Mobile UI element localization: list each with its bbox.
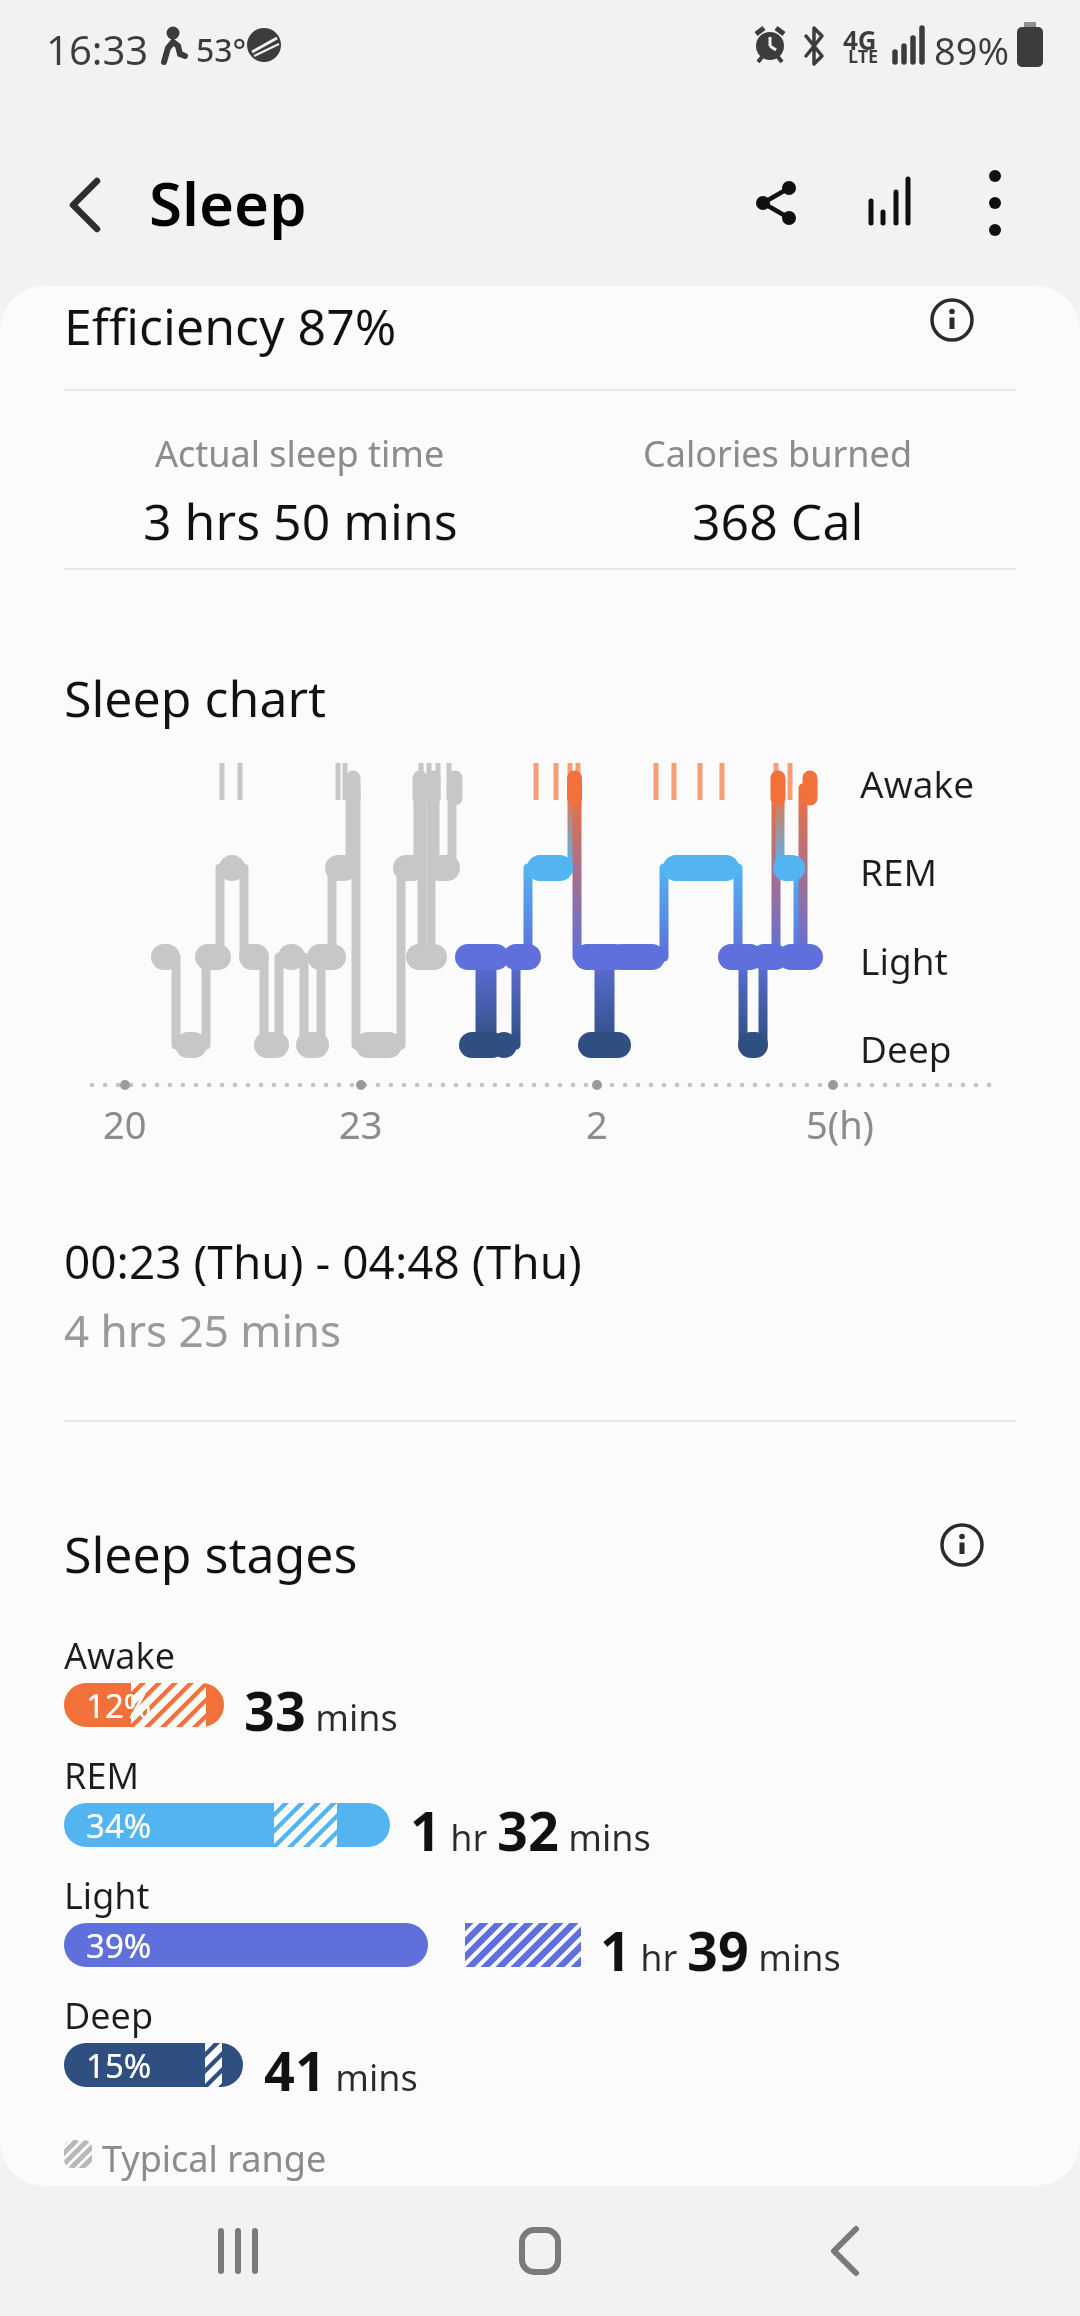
staticText: 1 <box>600 1913 631 1987</box>
staticText: 39 <box>687 1913 749 1987</box>
button[interactable] <box>732 158 822 248</box>
staticText: 89% <box>934 24 1010 76</box>
staticText: 3 hrs 50 mins <box>143 487 458 553</box>
staticText: Light <box>860 935 948 985</box>
staticText: mins <box>749 1933 841 1982</box>
staticText: mins <box>559 1813 651 1862</box>
staticText: 23 <box>339 1098 383 1148</box>
staticText: Awake <box>64 1631 176 1680</box>
staticText: Sleep chart <box>64 664 327 732</box>
staticText: 16:33 <box>46 22 149 76</box>
staticText: Deep <box>64 1991 154 2040</box>
staticText: hr <box>631 1933 687 1982</box>
staticText: Typical range <box>102 2134 327 2183</box>
staticText: Light <box>64 1871 150 1920</box>
staticText: REM <box>860 846 938 896</box>
button[interactable] <box>485 2196 595 2306</box>
button[interactable] <box>845 158 935 248</box>
staticText: 15% <box>86 2043 152 2087</box>
staticText: hr <box>441 1813 497 1862</box>
button[interactable] <box>930 298 974 342</box>
staticText: 53° <box>196 28 247 72</box>
staticText: 2 <box>586 1098 608 1148</box>
staticText: 368 Cal <box>692 487 864 553</box>
staticText: Sleep <box>149 162 307 244</box>
staticText: 41 <box>264 2033 326 2107</box>
staticText: 1 <box>410 1793 441 1867</box>
staticText: REM <box>64 1751 140 1800</box>
staticText: Calories burned <box>643 429 913 478</box>
button[interactable] <box>940 1523 984 1567</box>
button[interactable] <box>185 2196 295 2306</box>
staticText: 33 <box>244 1673 306 1747</box>
button[interactable] <box>950 158 1040 248</box>
staticText: 4 hrs 25 mins <box>64 1300 342 1360</box>
staticText: Sleep stages <box>64 1520 358 1588</box>
staticText: 39% <box>86 1923 152 1967</box>
staticText: Awake <box>860 758 975 808</box>
staticText: 34% <box>86 1803 152 1847</box>
staticText: Actual sleep time <box>155 429 445 478</box>
staticText: 00:23 (Thu) - 04:48 (Thu) <box>64 1230 582 1293</box>
staticText: Deep <box>860 1023 952 1073</box>
button[interactable] <box>790 2196 900 2306</box>
staticText: Efficiency 87% <box>64 292 397 360</box>
staticText: mins <box>326 2053 418 2102</box>
staticText: LTE <box>848 44 879 69</box>
staticText: mins <box>306 1693 398 1742</box>
staticText: 20 <box>103 1098 147 1148</box>
staticText: 4G <box>843 22 877 57</box>
staticText: 32 <box>497 1793 559 1867</box>
staticText: 5(h) <box>806 1098 875 1148</box>
staticText: 12% <box>86 1683 152 1727</box>
button[interactable] <box>40 160 130 250</box>
